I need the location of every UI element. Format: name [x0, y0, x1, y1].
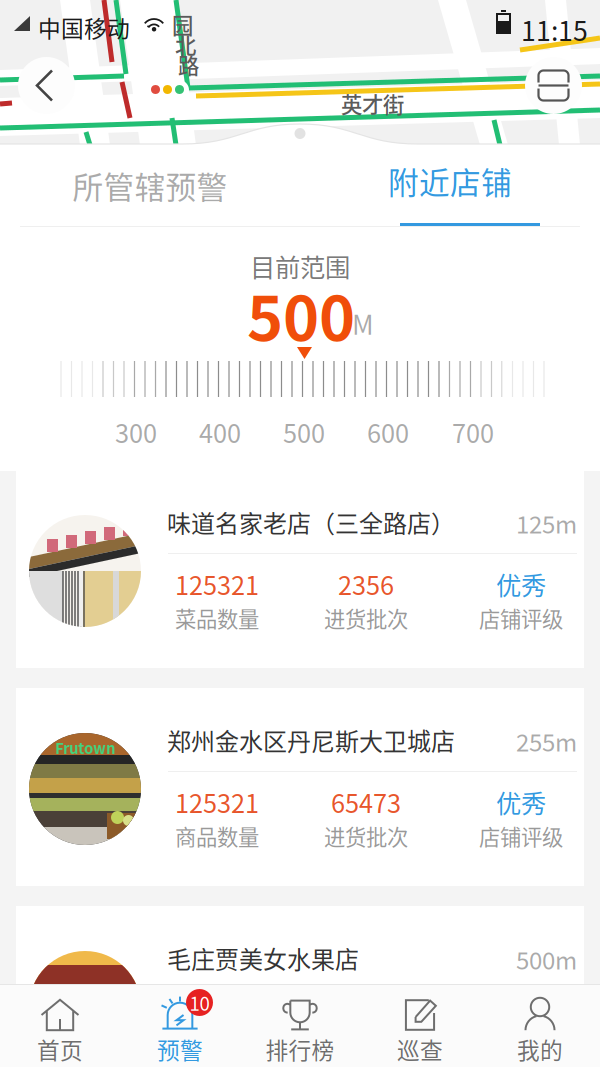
staticText: 附近店铺 — [388, 159, 512, 203]
staticText: 优秀 — [496, 784, 546, 820]
button[interactable]: Frutown — [16, 688, 584, 886]
staticText: 优秀 — [496, 566, 546, 602]
staticText: 进货批次 — [324, 1039, 408, 1067]
staticText: 菜品数量 — [175, 603, 259, 633]
button[interactable]: 首页 — [0, 985, 120, 1067]
staticText: 郑州金水区丹尼斯大卫城店 — [167, 723, 455, 757]
staticText: 125321 — [175, 784, 259, 820]
staticText: 进货批次 — [324, 821, 408, 851]
staticText: 255m — [516, 724, 577, 758]
staticText: 300 — [115, 414, 157, 450]
staticText: 店铺评级 — [479, 603, 563, 633]
staticText: 路 — [178, 49, 199, 80]
staticText: 500m — [516, 942, 577, 976]
staticText: 125m — [516, 506, 577, 540]
staticText: 店铺评级 — [479, 821, 563, 851]
staticText: 进货批次 — [324, 603, 408, 633]
staticText: 65473 — [331, 784, 401, 820]
button[interactable]: 排行榜 — [240, 985, 360, 1067]
staticText: 味道名家老店（三全路店） — [167, 505, 455, 539]
staticText: 目前范围 — [250, 248, 350, 284]
button[interactable]: Toggle list view — [525, 57, 582, 114]
staticText: 商品数量 — [175, 821, 259, 851]
staticText: 125321 — [175, 566, 259, 602]
staticText: 500 — [283, 414, 325, 450]
button[interactable]: 所管辖预警 — [0, 145, 300, 226]
staticText: 店铺评级 — [479, 1039, 563, 1067]
button[interactable]: 10 — [120, 985, 240, 1067]
staticText: 毛庄贾美女水果店 — [167, 941, 359, 975]
staticText: 所管辖预警 — [72, 163, 227, 208]
staticText: 优秀 — [496, 1002, 546, 1038]
staticText: 中国移动 — [38, 11, 130, 44]
staticText: 北 — [175, 29, 196, 60]
staticText: 500 — [247, 270, 355, 358]
button[interactable]: 附近店铺 — [300, 145, 600, 226]
staticText: 600 — [367, 414, 409, 450]
staticText: 11:15 — [521, 10, 588, 49]
staticText: 首页 — [37, 1033, 83, 1065]
staticText: 700 — [452, 414, 494, 450]
staticText: 125321 — [175, 1002, 259, 1038]
staticText: 园 — [172, 9, 193, 40]
staticText: M — [352, 304, 374, 342]
button[interactable]: Back — [18, 57, 75, 114]
staticText: 预警 — [157, 1033, 203, 1065]
staticText: Frutown — [55, 737, 115, 758]
staticText: 我的 — [517, 1033, 563, 1065]
button[interactable]: 味道名家老店（三全路店） — [16, 470, 584, 668]
staticText: 巡查 — [397, 1033, 443, 1065]
staticText: 10 — [189, 989, 209, 1016]
button[interactable]: 毛庄贾美女水果店 — [16, 906, 584, 1067]
staticText: 商品数量 — [175, 1039, 259, 1067]
staticText: 英才街 — [341, 88, 404, 119]
button[interactable]: 巡查 — [360, 985, 480, 1067]
button[interactable]: 我的 — [480, 985, 600, 1067]
staticText: 400 — [199, 414, 241, 450]
staticText: 2356 — [338, 566, 394, 602]
staticText: 排行榜 — [265, 1033, 334, 1065]
